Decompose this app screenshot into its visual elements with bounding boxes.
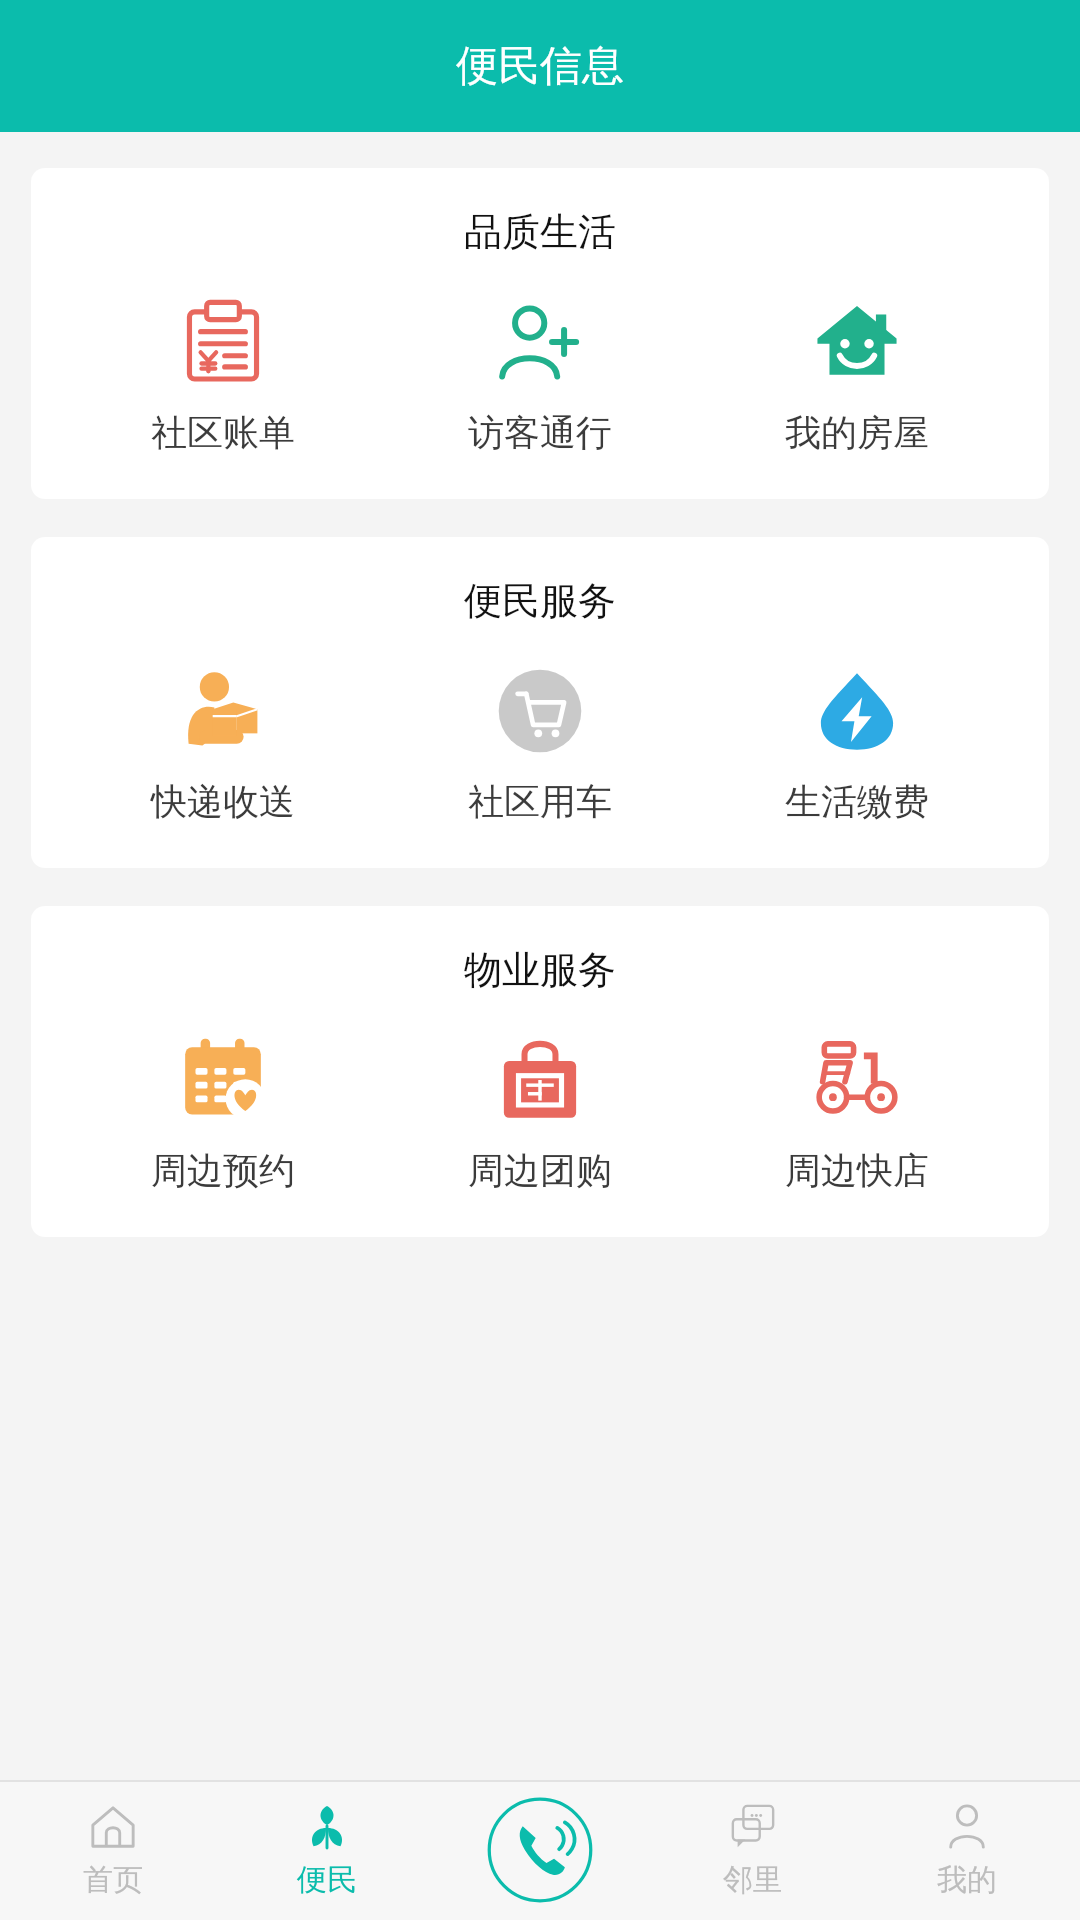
button[interactable]: 社区账单 bbox=[98, 292, 348, 459]
staticText: 生活缴费 bbox=[785, 779, 929, 824]
other: 社区用车 bbox=[497, 668, 583, 754]
other: 周边快店 bbox=[814, 1037, 900, 1123]
staticText: 品质生活 bbox=[31, 208, 1049, 256]
staticText: 我的 bbox=[937, 1861, 997, 1899]
button[interactable]: 社区用车 bbox=[415, 661, 665, 828]
staticText: 首页 bbox=[83, 1861, 143, 1899]
button[interactable]: 我的 bbox=[867, 1793, 1067, 1907]
other: 周边预约 bbox=[180, 1037, 266, 1123]
staticText: 邻里 bbox=[723, 1861, 783, 1899]
button[interactable]: 周边快店 bbox=[732, 1030, 982, 1197]
staticText: 周边团购 bbox=[468, 1148, 612, 1193]
button[interactable]: 呼叫 bbox=[440, 1796, 640, 1904]
staticText: 周边快店 bbox=[785, 1148, 929, 1193]
button[interactable]: 首页 bbox=[13, 1793, 213, 1907]
other: 生活缴费 bbox=[814, 668, 900, 754]
button[interactable]: 便民 bbox=[227, 1793, 427, 1907]
staticText: 周边预约 bbox=[151, 1148, 295, 1193]
other: 访客通行 bbox=[497, 299, 583, 385]
button[interactable]: 快递收送 bbox=[98, 661, 348, 828]
staticText: 访客通行 bbox=[468, 410, 612, 455]
staticText: 社区用车 bbox=[468, 779, 612, 824]
button[interactable]: 周边预约 bbox=[98, 1030, 348, 1197]
button[interactable]: 周边团购 bbox=[415, 1030, 665, 1197]
button[interactable]: 访客通行 bbox=[415, 292, 665, 459]
button[interactable]: 邻里 bbox=[653, 1793, 853, 1907]
staticText: 我的房屋 bbox=[785, 410, 929, 455]
other: 周边团购 bbox=[497, 1037, 583, 1123]
staticText: 物业服务 bbox=[31, 946, 1049, 994]
staticText: 快递收送 bbox=[151, 779, 295, 824]
staticText: 社区账单 bbox=[151, 410, 295, 455]
button[interactable]: 生活缴费 bbox=[732, 661, 982, 828]
button[interactable]: 我的房屋 bbox=[732, 292, 982, 459]
staticText: 便民信息 bbox=[456, 40, 624, 93]
staticText: 便民 bbox=[297, 1861, 357, 1899]
other: 我的房屋 bbox=[814, 299, 900, 385]
other: 社区账单 bbox=[180, 299, 266, 385]
staticText: 便民服务 bbox=[31, 577, 1049, 625]
other: 快递收送 bbox=[180, 668, 266, 754]
